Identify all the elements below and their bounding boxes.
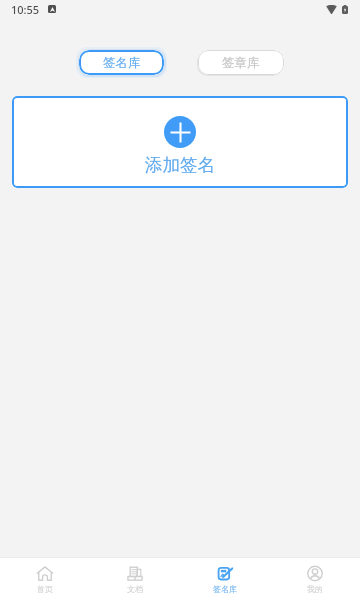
button[interactable]: 签名库 — [79, 50, 164, 75]
staticText: 签名库 — [213, 584, 237, 594]
staticText: 文档 — [127, 584, 143, 594]
staticText: 10:55 — [11, 2, 40, 17]
other: Battery — [342, 5, 348, 14]
button[interactable]: 首页 — [0, 558, 90, 600]
staticText: 签章库 — [222, 55, 260, 71]
staticText: 添加签名 — [145, 154, 215, 176]
other: Wi-Fi — [326, 5, 337, 14]
staticText: 首页 — [37, 584, 53, 594]
staticText: 我的 — [307, 584, 323, 594]
button[interactable]: 签名库 — [180, 558, 270, 600]
button[interactable]: 添加签名 — [12, 96, 348, 188]
staticText: 签名库 — [103, 55, 141, 71]
button[interactable]: 文档 — [90, 558, 180, 600]
button[interactable]: 我的 — [270, 558, 360, 600]
button[interactable]: 签章库 — [198, 50, 284, 75]
